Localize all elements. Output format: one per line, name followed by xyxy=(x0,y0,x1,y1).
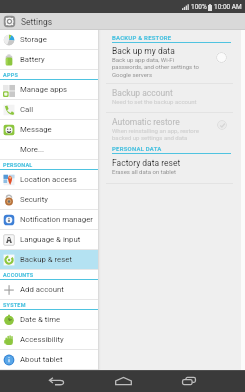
staticText: Language & input xyxy=(20,235,81,244)
staticText: PERSONAL xyxy=(3,162,33,168)
staticText: Settings xyxy=(21,17,53,27)
button[interactable]: Language & input xyxy=(0,230,98,249)
staticText: 10:00 AM xyxy=(214,3,242,11)
button[interactable]: Add account xyxy=(0,280,98,299)
button[interactable]: About tablet xyxy=(0,350,98,369)
staticText: Need to set the backup account xyxy=(112,98,197,105)
staticText: Back up app data, Wi-Fi passwords, and o… xyxy=(112,56,199,78)
staticText: Backup account xyxy=(112,88,173,98)
staticText: Security xyxy=(20,195,48,204)
button[interactable]: Automatic restore xyxy=(101,113,241,144)
staticText: APPS xyxy=(3,72,18,78)
staticText: Backup & reset xyxy=(20,255,72,264)
staticText: Notification manager xyxy=(20,215,94,224)
button[interactable]: Backup & reset xyxy=(0,250,98,269)
staticText: Manage apps xyxy=(20,85,68,94)
staticText: BACKUP & RESTORE xyxy=(112,34,172,41)
button[interactable]: Recent apps xyxy=(171,370,207,392)
staticText: When reinstalling an app, restore backed… xyxy=(112,127,199,141)
button[interactable]: Back xyxy=(38,370,74,392)
staticText: PERSONAL DATA xyxy=(112,145,162,152)
button[interactable]: Message xyxy=(0,120,98,139)
staticText: Message xyxy=(20,125,52,134)
button[interactable]: Back up my data xyxy=(101,43,241,83)
button[interactable]: Notification manager xyxy=(0,210,98,229)
staticText: SYSTEM xyxy=(3,302,26,308)
button[interactable]: Location access xyxy=(0,170,98,189)
staticText: Factory data reset xyxy=(112,158,181,168)
button[interactable]: Home xyxy=(105,370,141,392)
staticText: 100% xyxy=(191,3,207,11)
button[interactable]: Accessibility xyxy=(0,330,98,349)
staticText: Erases all data on tablet xyxy=(112,168,176,175)
button[interactable]: Settings xyxy=(0,13,98,30)
staticText: Call xyxy=(20,105,34,114)
button[interactable]: Date & time xyxy=(0,310,98,329)
staticText: Back up my data xyxy=(112,46,175,56)
button[interactable]: More... xyxy=(0,140,98,159)
staticText: ACCOUNTS xyxy=(3,272,34,278)
staticText: Automatic restore xyxy=(112,117,180,127)
staticText: Location access xyxy=(20,175,77,184)
button[interactable]: Security xyxy=(0,190,98,209)
staticText: Accessibility xyxy=(20,335,64,344)
staticText: Battery xyxy=(20,55,45,64)
button[interactable]: Storage xyxy=(0,30,98,49)
button[interactable]: Battery xyxy=(0,50,98,69)
button[interactable]: Backup account xyxy=(101,84,241,112)
button[interactable]: Manage apps xyxy=(0,80,98,99)
staticText: More... xyxy=(20,145,45,154)
staticText: About tablet xyxy=(20,355,63,364)
button[interactable]: Factory data reset xyxy=(101,154,241,183)
staticText: Date & time xyxy=(20,315,61,324)
button[interactable]: Call xyxy=(0,100,98,119)
staticText: Add account xyxy=(20,285,64,294)
staticText: Storage xyxy=(20,35,47,44)
